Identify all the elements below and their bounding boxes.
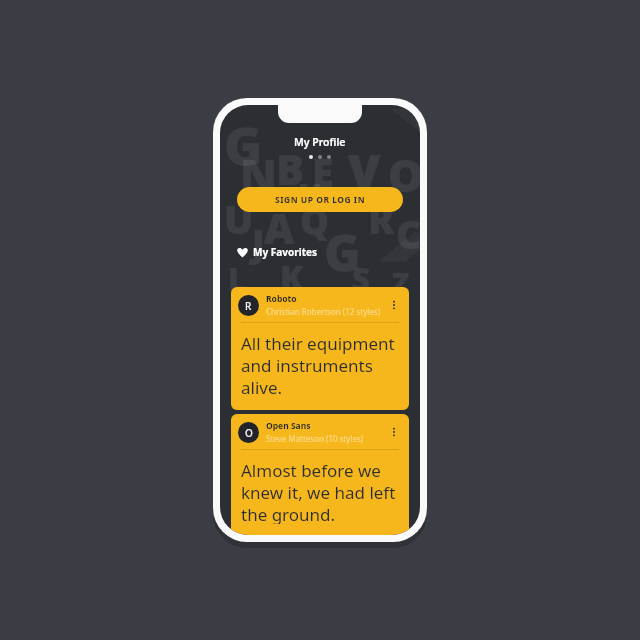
button[interactable]: O: [231, 414, 409, 535]
staticText: R: [368, 192, 395, 245]
button[interactable]: SIGN UP OR LOG IN: [237, 187, 403, 212]
staticText: Z: [392, 262, 410, 301]
staticText: A: [264, 200, 295, 257]
staticText: C: [396, 207, 420, 260]
staticText: N: [240, 145, 277, 205]
button[interactable]: More options: [386, 297, 402, 313]
staticText: All their equipment and instruments aliv…: [241, 332, 399, 399]
staticText: Christian Robertson (12 styles): [266, 306, 381, 317]
staticText: G: [324, 218, 361, 285]
staticText: O: [388, 145, 420, 205]
staticText: My Profile: [294, 135, 346, 149]
button[interactable]: R: [231, 287, 409, 410]
staticText: J: [252, 218, 265, 268]
staticText: Almost before we knew it, we had left th…: [241, 459, 396, 524]
button[interactable]: More options: [386, 424, 402, 440]
staticText: Q: [300, 196, 330, 246]
staticText: Open Sans: [266, 420, 311, 432]
staticText: Steve Matteson (10 styles): [266, 433, 364, 444]
staticText: B: [276, 141, 305, 198]
staticText: R: [245, 299, 252, 313]
staticText: Roboto: [266, 293, 297, 305]
staticText: G: [224, 109, 263, 180]
staticText: U: [224, 192, 254, 245]
staticText: E: [312, 145, 334, 198]
staticText: S: [352, 258, 370, 300]
staticText: O: [245, 426, 253, 440]
staticText: My Favorites: [253, 245, 317, 259]
staticText: V: [348, 138, 381, 202]
staticText: K: [280, 254, 304, 300]
staticText: SIGN UP OR LOG IN: [275, 194, 366, 206]
staticText: y: [300, 167, 321, 213]
staticText: L: [228, 258, 247, 300]
